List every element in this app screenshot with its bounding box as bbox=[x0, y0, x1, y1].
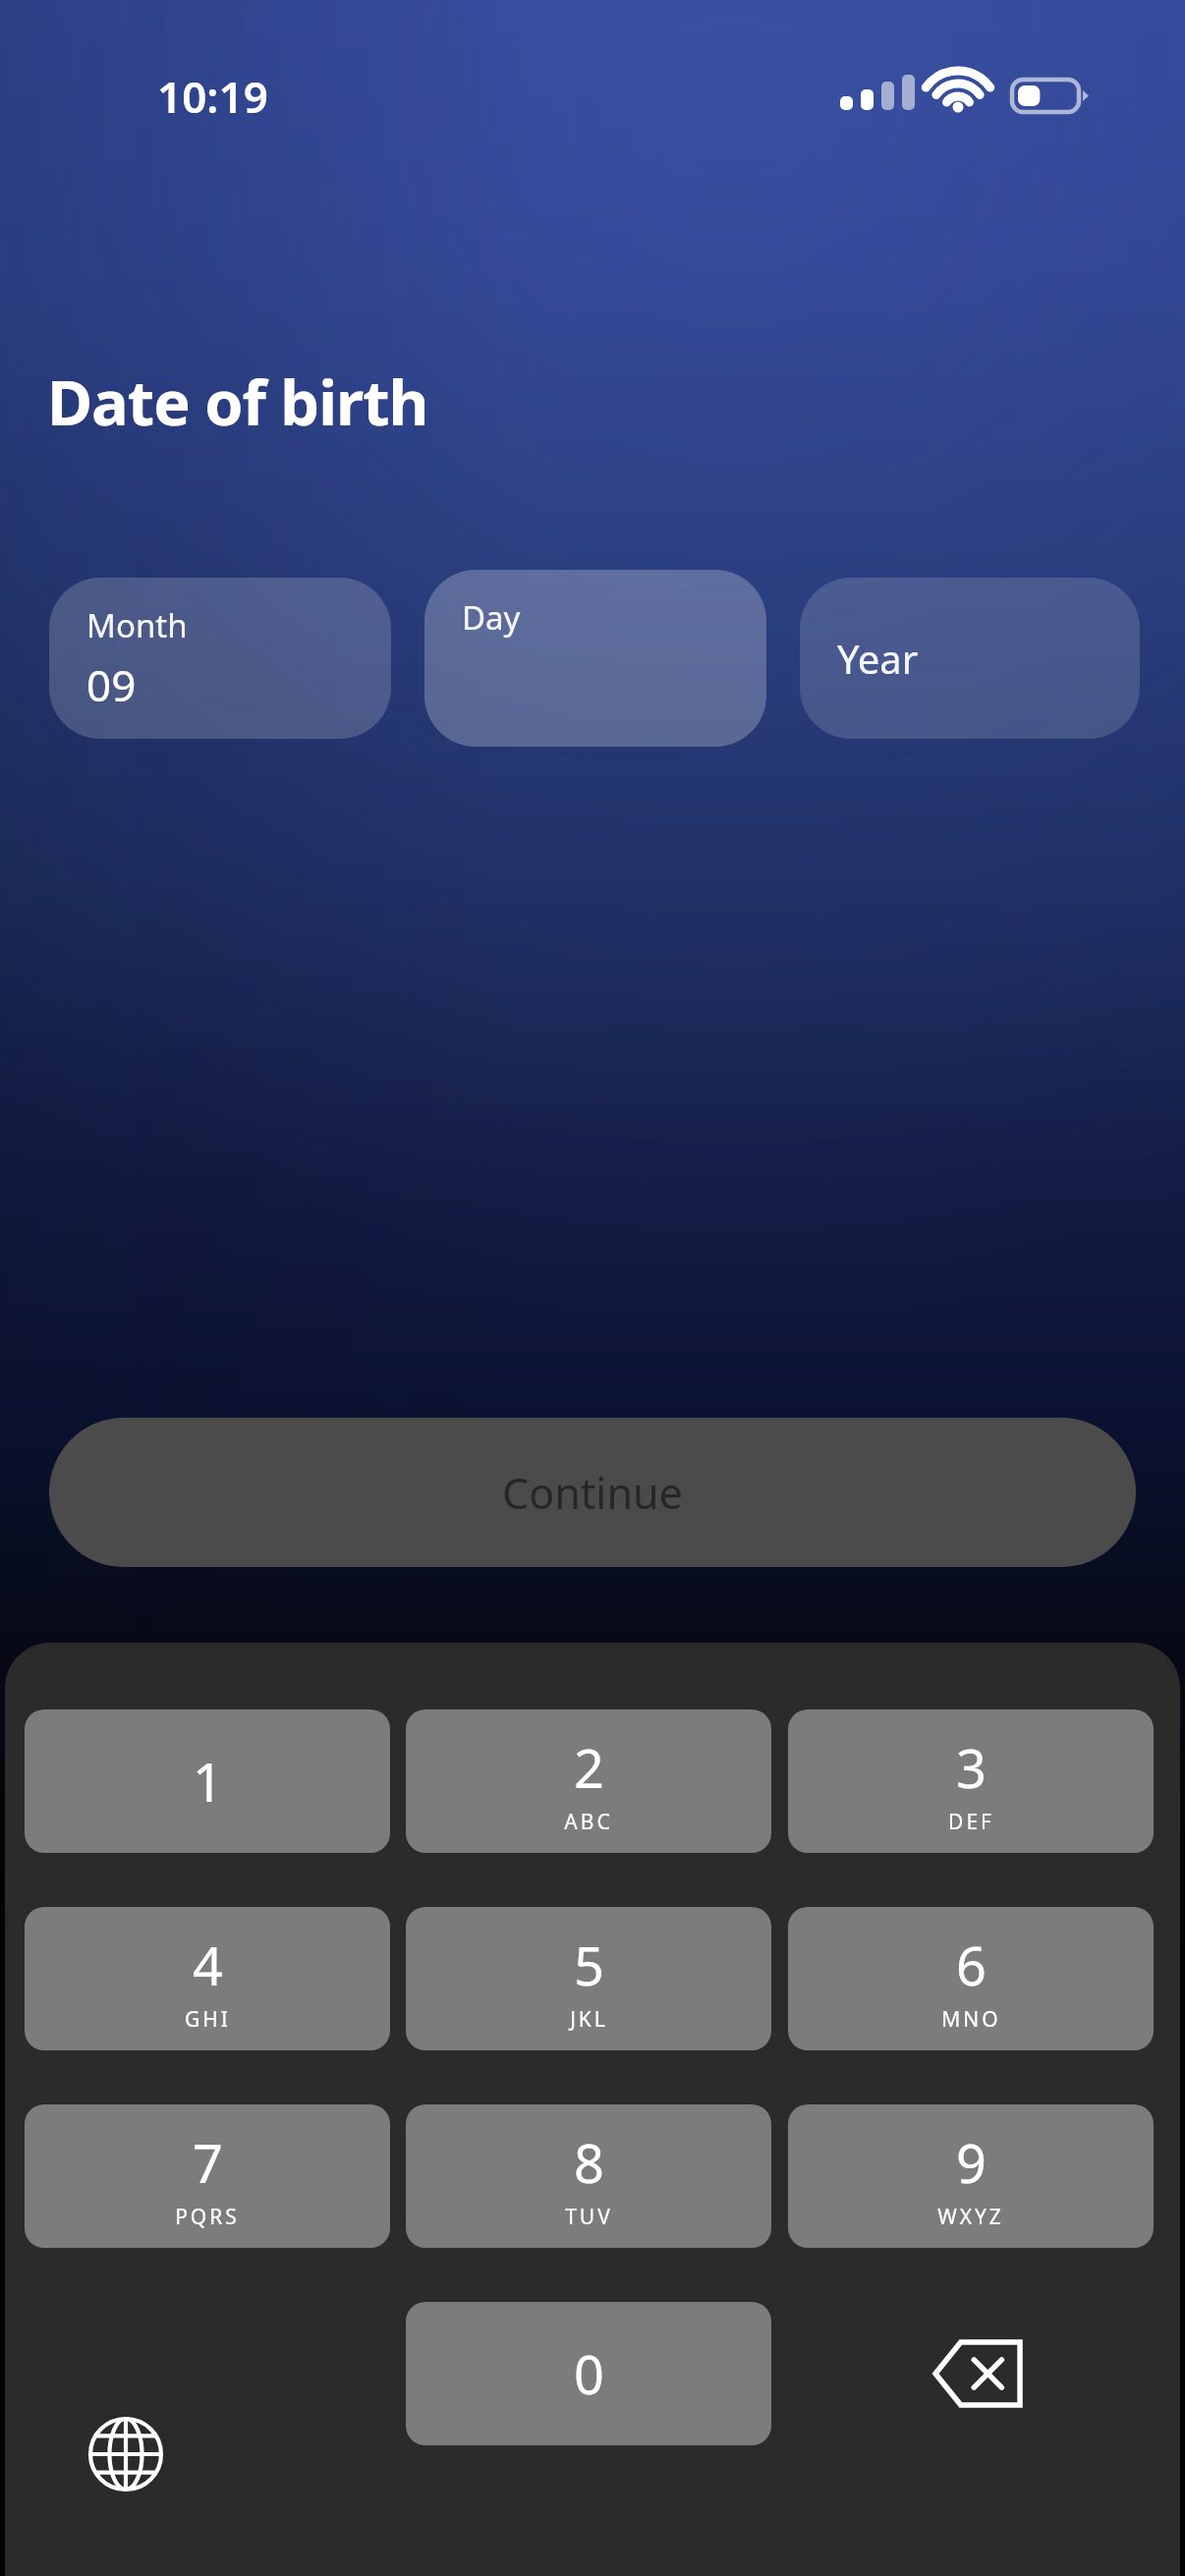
staticText: Day bbox=[462, 595, 521, 640]
button[interactable]: Continue bbox=[49, 1418, 1136, 1567]
staticText: 1 bbox=[193, 1745, 223, 1818]
button[interactable]: 2 bbox=[406, 1709, 771, 1853]
staticText: GHI bbox=[185, 2005, 231, 2034]
button[interactable]: 9 bbox=[788, 2104, 1154, 2248]
button[interactable]: 6 bbox=[788, 1907, 1154, 2050]
button[interactable]: Backspace bbox=[914, 2311, 1042, 2436]
staticText: Month bbox=[86, 603, 188, 647]
button[interactable]: Change keyboard language bbox=[77, 2405, 175, 2503]
staticText: 5 bbox=[574, 1929, 604, 2001]
staticText: 8 bbox=[574, 2126, 604, 2199]
button[interactable]: 7 bbox=[25, 2104, 390, 2248]
staticText: 9 bbox=[956, 2126, 987, 2199]
staticText: 2 bbox=[574, 1731, 604, 1804]
staticText: 4 bbox=[193, 1929, 223, 2001]
button[interactable]: Year bbox=[800, 578, 1140, 739]
staticText: Date of birth bbox=[47, 360, 428, 444]
staticText: 6 bbox=[956, 1929, 987, 2001]
staticText: PQRS bbox=[175, 2203, 240, 2231]
staticText: 3 bbox=[956, 1731, 987, 1804]
staticText: MNO bbox=[941, 2005, 1001, 2034]
button[interactable]: Day bbox=[424, 570, 766, 747]
button[interactable]: 0 bbox=[406, 2302, 771, 2445]
button[interactable]: 4 bbox=[25, 1907, 390, 2050]
staticText: Continue bbox=[502, 1464, 683, 1522]
staticText: TUV bbox=[565, 2203, 613, 2231]
staticText: 10:19 bbox=[157, 67, 268, 126]
staticText: 0 bbox=[574, 2337, 604, 2410]
button[interactable]: 5 bbox=[406, 1907, 771, 2050]
button[interactable]: Month bbox=[49, 578, 391, 739]
staticText: WXYZ bbox=[937, 2203, 1004, 2231]
staticText: 7 bbox=[193, 2126, 223, 2199]
button[interactable]: 8 bbox=[406, 2104, 771, 2248]
staticText: DEF bbox=[948, 1808, 994, 1836]
staticText: 09 bbox=[86, 655, 137, 714]
staticText: JKL bbox=[570, 2005, 608, 2034]
staticText: Year bbox=[837, 632, 919, 685]
button[interactable]: 3 bbox=[788, 1709, 1154, 1853]
button[interactable]: 1 bbox=[25, 1709, 390, 1853]
staticText: ABC bbox=[564, 1808, 613, 1836]
